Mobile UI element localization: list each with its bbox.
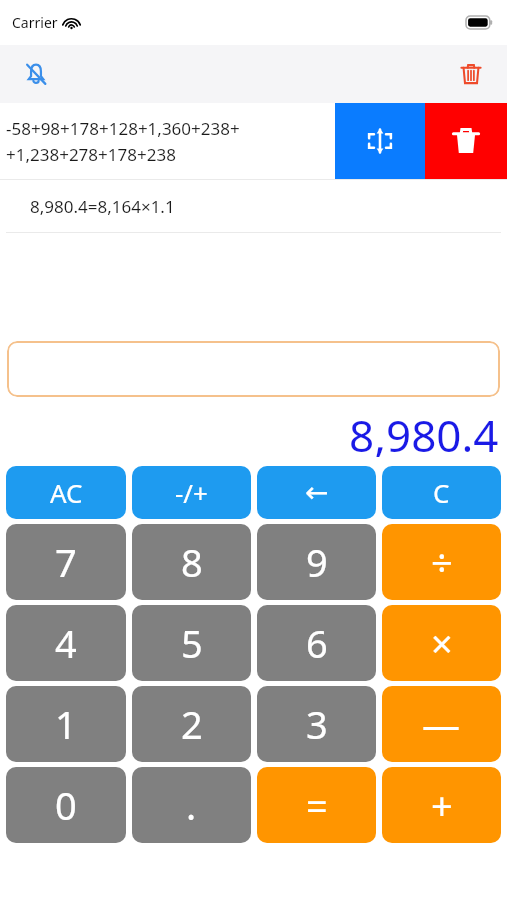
button[interactable]: ← <box>257 466 376 519</box>
button[interactable]: Move entry <box>335 103 425 179</box>
staticText: — <box>422 698 461 750</box>
button[interactable]: -58+98+178+128+1,360+238+ +1,238+278+178… <box>0 103 335 179</box>
button[interactable]: 2 <box>132 686 251 762</box>
staticText: 2 <box>181 698 203 750</box>
staticText: 4 <box>55 617 77 669</box>
staticText: 1 <box>55 698 77 750</box>
button[interactable]: 5 <box>132 605 251 681</box>
staticText: ← <box>305 476 329 509</box>
button[interactable]: 6 <box>257 605 376 681</box>
staticText: Carrier <box>12 13 58 32</box>
staticText: 8,980.4=8,164×1.1 <box>30 195 175 218</box>
staticText: 6 <box>306 617 328 669</box>
button[interactable]: = <box>257 767 376 843</box>
staticText: 8 <box>181 536 203 588</box>
button[interactable]: AC <box>6 466 126 519</box>
button[interactable]: 4 <box>6 605 126 681</box>
button[interactable]: -/+ <box>132 466 251 519</box>
button[interactable]: — <box>382 686 501 762</box>
button[interactable]: 8 <box>132 524 251 600</box>
button[interactable]: × <box>382 605 501 681</box>
staticText: 9 <box>306 536 328 588</box>
staticText: C <box>433 475 450 510</box>
staticText: + <box>431 779 453 831</box>
button[interactable] <box>7 341 500 397</box>
staticText: 8,980.4 <box>349 405 499 457</box>
staticText: ÷ <box>431 536 453 588</box>
staticText: 5 <box>181 617 203 669</box>
button[interactable]: 1 <box>6 686 126 762</box>
button[interactable]: ÷ <box>382 524 501 600</box>
staticText: AC <box>50 475 83 510</box>
button[interactable]: 0 <box>6 767 126 843</box>
staticText: . <box>186 779 197 831</box>
button[interactable]: 3 <box>257 686 376 762</box>
staticText: -58+98+178+128+1,360+238+ +1,238+278+178… <box>6 117 240 166</box>
button[interactable]: . <box>132 767 251 843</box>
button[interactable]: Delete entry <box>425 103 507 179</box>
staticText: × <box>431 617 453 669</box>
button[interactable]: 7 <box>6 524 126 600</box>
button[interactable]: 9 <box>257 524 376 600</box>
button[interactable]: Delete all <box>449 52 493 96</box>
staticText: 7 <box>55 536 77 588</box>
staticText: -/+ <box>175 475 208 510</box>
button[interactable]: C <box>382 466 501 519</box>
button[interactable]: 8,980.4=8,164×1.1 <box>0 180 507 232</box>
staticText: = <box>306 779 328 831</box>
button[interactable]: Mute notifications <box>14 52 58 96</box>
staticText: 0 <box>55 779 77 831</box>
button[interactable]: + <box>382 767 501 843</box>
staticText: 3 <box>306 698 328 750</box>
